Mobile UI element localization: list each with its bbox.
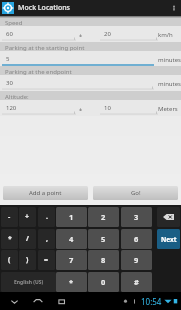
staticText: 9 [134,255,139,265]
button[interactable]: , [38,229,55,249]
button[interactable]: 5 [2,55,154,66]
button[interactable]: Next [157,229,180,249]
button[interactable]: # [121,272,152,292]
button[interactable]: 5 [88,229,119,249]
staticText: 3 [134,212,139,222]
button[interactable]: 30 [2,79,154,90]
button[interactable]: Add a point [3,186,88,200]
staticText: 2 [101,212,106,222]
button[interactable]: Recent apps [54,293,70,309]
button[interactable]: * [1,229,18,249]
staticText: Parking at the starting point [5,44,85,52]
staticText: ± [79,31,83,38]
staticText: / [26,234,29,244]
staticText: English (US) [14,279,44,286]
button[interactable]: 6 [121,229,152,249]
button[interactable]: 10 [100,104,158,115]
staticText: 60 [6,30,13,38]
staticText: minutes [158,80,181,88]
button[interactable]: Go! [93,186,178,200]
staticText: ( [8,255,11,265]
staticText: Parking at the endpoint [5,68,72,76]
staticText: Speed [5,19,23,27]
staticText: Add a point [29,189,62,197]
button[interactable]: 120 [2,104,76,115]
staticText: 5 [6,55,10,63]
staticText: Meters [158,105,178,113]
button[interactable]: ( [1,250,18,270]
button[interactable]: 2 [88,207,119,227]
staticText: 7 [69,255,74,265]
staticText: = [44,255,49,265]
staticText: 6 [134,234,139,244]
button[interactable]: English (US) [1,272,56,292]
staticText: 30 [6,79,13,87]
staticText: 120 [6,104,17,112]
staticText: 1 [69,212,74,222]
button[interactable]: Back [6,293,22,309]
staticText: 8 [101,255,106,265]
staticText: ) [26,255,29,265]
button[interactable]: 0 [88,272,119,292]
button[interactable]: * [56,272,87,292]
button[interactable]: 1 [56,207,87,227]
button[interactable]: 7 [56,250,87,270]
button[interactable]: Home [30,293,46,309]
staticText: 10 [104,104,111,112]
button[interactable]: 9 [121,250,152,270]
button[interactable]: 4 [56,229,87,249]
staticText: 10:54 [141,296,162,307]
button[interactable]: 8 [88,250,119,270]
button[interactable]: ) [19,250,36,270]
staticText: - [8,212,11,222]
button[interactable]: Delete [157,207,180,227]
button[interactable]: + [19,207,36,227]
staticText: # [134,277,139,287]
staticText: Altitude: [5,93,29,101]
button[interactable]: More options [167,0,181,16]
staticText: Go! [131,189,141,197]
staticText: 4 [69,234,74,244]
button[interactable]: 20 [100,30,158,41]
button[interactable]: 3 [121,207,152,227]
staticText: Next [161,235,177,244]
staticText: + [25,212,30,222]
staticText: . [46,212,48,222]
button[interactable]: - [1,207,18,227]
staticText: * [69,277,74,287]
staticText: * [8,234,12,244]
button[interactable]: / [19,229,36,249]
staticText: km/h [158,31,173,39]
button[interactable]: . [38,207,55,227]
staticText: 0 [101,277,106,287]
staticText: ± [79,105,83,112]
staticText: , [46,234,48,244]
staticText: minutes [158,56,181,64]
staticText: 20 [104,30,111,38]
button[interactable]: = [38,250,55,270]
staticText: 5 [101,234,106,244]
staticText: Mock Locations [18,3,70,13]
button[interactable]: 60 [2,30,76,41]
